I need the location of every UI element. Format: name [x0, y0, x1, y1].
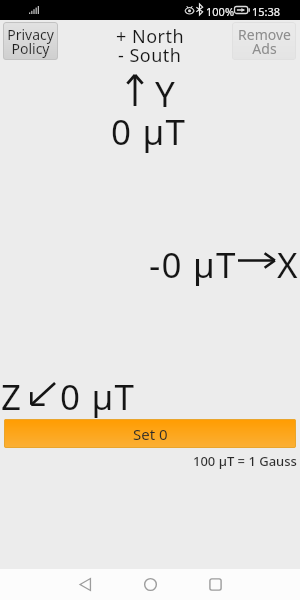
staticText: Y [155, 70, 177, 118]
staticText: 100% [206, 4, 235, 19]
staticText: + North [116, 24, 185, 49]
button[interactable]: Set 0 [4, 419, 296, 448]
staticText: 0 µT [111, 108, 187, 156]
staticText: 15:38 [252, 4, 281, 19]
button[interactable]: Back [70, 569, 100, 600]
staticText: Z [1, 373, 23, 421]
staticText: - South [118, 43, 182, 68]
staticText: 0 µT [60, 373, 136, 421]
staticText: X [277, 241, 299, 289]
staticText: Set 0 [133, 424, 168, 444]
staticText: Remove Ads [238, 25, 291, 58]
button[interactable]: Recent apps [200, 569, 230, 600]
staticText: Privacy Policy [7, 25, 54, 58]
staticText: 100 µT = 1 Gauss [193, 452, 297, 470]
button[interactable]: Home [135, 569, 165, 600]
button[interactable]: Remove Ads [232, 22, 296, 60]
button[interactable]: Privacy Policy [3, 22, 58, 60]
staticText: -0 µT [149, 241, 237, 289]
